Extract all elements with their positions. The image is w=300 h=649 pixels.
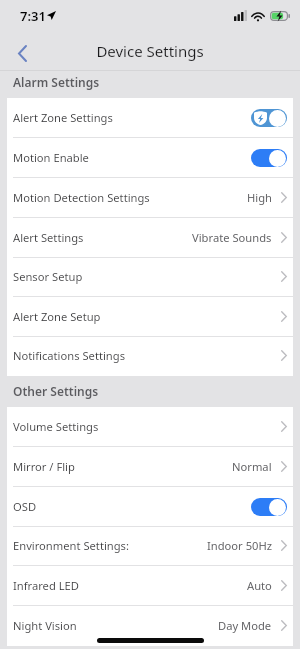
button[interactable]: Alert Zone Settings [7,98,293,138]
button[interactable]: Alert Settings [7,218,293,258]
button[interactable]: Motion Enable [7,138,293,178]
staticText: Vibrate Sounds [192,230,272,245]
button[interactable]: Mirror / Flip [7,447,293,487]
staticText: Alert Settings [13,230,84,245]
button[interactable]: Environment Settings: [7,527,293,566]
button[interactable]: Motion Detection Settings [7,178,293,218]
staticText: Night Vision [13,618,77,633]
staticText: Infrared LED [13,578,79,593]
button[interactable]: Volume Settings [7,407,293,447]
staticText: Device Settings [96,41,204,61]
staticText: Alert Zone Settings [13,110,113,125]
staticText: OSD [13,499,37,514]
staticText: Auto [247,578,272,593]
staticText: Sensor Setup [13,269,83,284]
staticText: 7:31 [20,7,46,25]
staticText: Volume Settings [13,419,99,434]
staticText: Notifications Settings [13,348,126,363]
button[interactable]: Infrared LED [7,566,293,606]
staticText: Normal [232,459,272,474]
staticText: High [247,190,272,205]
button[interactable]: Alert Zone Setup [7,297,293,337]
button[interactable]: Night Vision [7,606,293,646]
staticText: Mirror / Flip [13,459,75,474]
button[interactable]: Sensor Setup [7,258,293,297]
button[interactable]: Notifications Settings [7,337,293,376]
staticText: Alert Zone Setup [13,309,101,324]
staticText: Motion Enable [13,150,89,165]
staticText: Other Settings [13,383,99,399]
staticText: Environment Settings: [13,538,129,553]
button[interactable]: OSD [7,487,293,527]
button[interactable]: Back [0,31,40,71]
staticText: Indoor 50Hz [207,538,272,553]
staticText: Day Mode [218,618,272,633]
staticText: Alarm Settings [13,74,100,90]
staticText: Motion Detection Settings [13,190,150,205]
